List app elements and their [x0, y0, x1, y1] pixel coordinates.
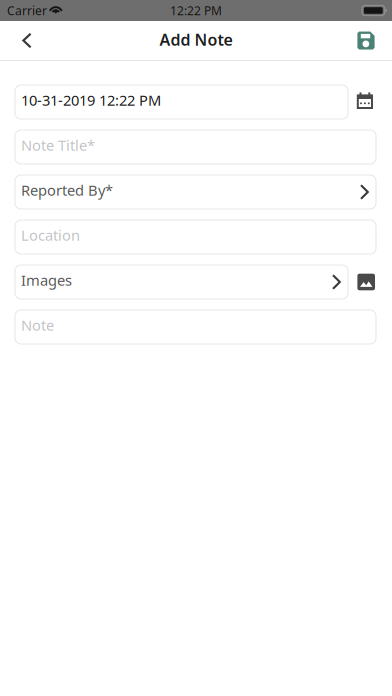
staticText: 10-31-2019 12:22 PM	[21, 90, 161, 110]
staticText: Note Title*	[21, 135, 95, 155]
button[interactable]: Back	[7, 21, 47, 60]
button[interactable]: Images	[15, 265, 348, 299]
button[interactable]: Save	[346, 21, 386, 60]
staticText: Location	[21, 225, 80, 245]
staticText: 12:22 PM	[170, 2, 222, 18]
staticText: Carrier	[7, 2, 47, 18]
staticText: Add Note	[159, 29, 232, 50]
button[interactable]: Add photo	[348, 265, 376, 299]
button[interactable]: Pick date	[348, 85, 376, 119]
staticText: Reported By*	[21, 180, 113, 200]
staticText: Images	[21, 270, 72, 290]
staticText: Note	[21, 315, 54, 335]
button[interactable]: Reported By*	[15, 175, 376, 209]
